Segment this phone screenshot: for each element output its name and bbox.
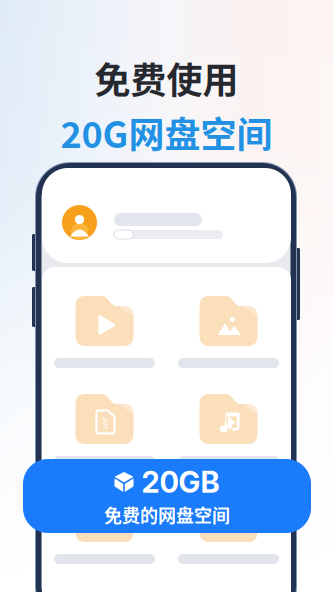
button[interactable]: [178, 492, 279, 564]
button[interactable]: [178, 394, 279, 466]
staticText: 20G网盘空间: [60, 106, 272, 158]
button[interactable]: [54, 296, 155, 368]
button[interactable]: 20GB: [23, 459, 311, 533]
staticText: 免费使用: [94, 52, 238, 104]
staticText: 20GB: [141, 464, 219, 500]
staticText: 免费的网盘空间: [104, 502, 230, 528]
button[interactable]: [178, 296, 279, 368]
button[interactable]: [54, 394, 155, 466]
button[interactable]: [54, 492, 155, 564]
button[interactable]: [42, 168, 291, 263]
